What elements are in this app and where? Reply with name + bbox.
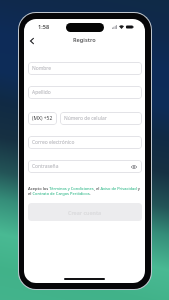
staticText: Contraseña xyxy=(32,163,59,170)
staticText: Crear cuenta xyxy=(68,209,102,216)
staticText: Nombre xyxy=(32,65,51,72)
staticText: (MX) +52 xyxy=(32,115,53,122)
staticText: Registro xyxy=(73,36,96,44)
staticText: Apellido xyxy=(32,89,51,96)
staticText: 1:58 xyxy=(38,23,50,31)
button[interactable]: Mostrar contrasena xyxy=(130,163,138,171)
button[interactable]: Back xyxy=(26,35,37,46)
button[interactable]: Apellido xyxy=(28,86,142,99)
staticText: Número de celular xyxy=(64,115,107,122)
staticText: Correo electrónico xyxy=(32,139,75,146)
button[interactable]: Número de celular xyxy=(60,112,142,125)
button[interactable]: Correo electrónico xyxy=(28,136,142,149)
button[interactable]: Acepto los Términos y Condiciones, el Av… xyxy=(28,186,142,196)
button[interactable]: (MX) +52 xyxy=(28,112,57,125)
button[interactable]: Contraseña xyxy=(28,160,142,173)
button[interactable]: Nombre xyxy=(28,62,142,75)
